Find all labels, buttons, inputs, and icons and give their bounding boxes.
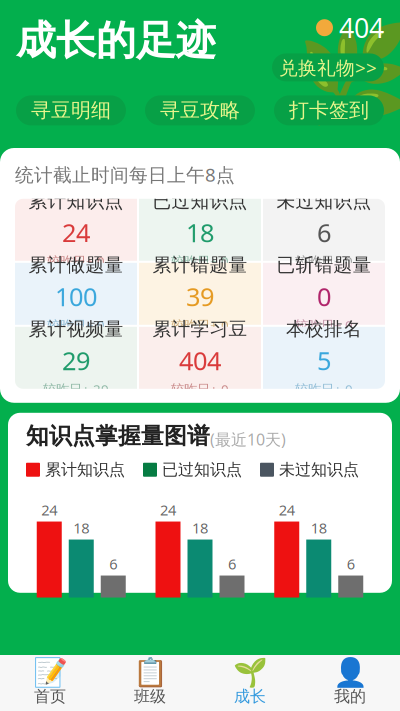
staticText: 24 — [160, 500, 176, 520]
staticText: 6 — [228, 554, 236, 574]
staticText: 我的 — [334, 687, 366, 706]
staticText: 成长 — [234, 687, 266, 706]
staticText: 较昨日+ 0 — [171, 316, 229, 334]
staticText: 累计学习豆 — [152, 318, 247, 341]
staticText: 累计错题量 — [152, 254, 247, 277]
staticText: 未过知识点 — [279, 460, 359, 480]
staticText: 24 — [41, 500, 57, 520]
staticText: 较昨日+ 0 — [47, 316, 105, 334]
button[interactable]: 兑换礼物>> — [272, 53, 384, 81]
staticText: 0 — [317, 280, 331, 313]
staticText: 18 — [311, 518, 327, 538]
button[interactable]: 寻豆攻略 — [145, 95, 255, 125]
staticText: 29 — [62, 344, 90, 377]
staticText: 成长的足迹 — [16, 16, 216, 65]
staticText: 较昨日+ 29 — [43, 380, 109, 398]
staticText: 较昨日+ 0 — [171, 252, 229, 270]
staticText: 寻豆明细 — [31, 98, 111, 123]
button[interactable]: 打卡签到 — [274, 95, 384, 125]
staticText: 📝 — [32, 656, 67, 688]
staticText: 打卡签到 — [289, 98, 369, 123]
staticText: 18 — [192, 518, 208, 538]
staticText: 累计知识点 — [45, 460, 125, 480]
staticText: 18 — [186, 216, 214, 249]
staticText: 🌿 — [297, 21, 400, 127]
staticText: 6 — [109, 554, 117, 574]
staticText: 班级 — [134, 687, 166, 706]
staticText: 已过知识点 — [162, 460, 242, 480]
staticText: 24 — [62, 216, 90, 249]
staticText: 较昨日+ 0 — [295, 316, 353, 334]
staticText: 已过知识点 — [152, 190, 247, 213]
staticText: 6 — [347, 554, 355, 574]
staticText: 🌱 — [232, 656, 267, 688]
staticText: 首页 — [34, 687, 66, 706]
staticText: 已斩错题量 — [276, 254, 371, 277]
staticText: 累计知识点 — [28, 190, 123, 213]
staticText: 较昨日+ 0 — [47, 252, 105, 270]
staticText: 知识点掌握量图谱 — [26, 422, 210, 450]
staticText: 较昨日+ 0 — [295, 380, 353, 398]
staticText: 未过知识点 — [276, 190, 371, 213]
staticText: (最近10天) — [210, 429, 286, 450]
staticText: 📋 — [132, 656, 167, 688]
button[interactable]: 📋 — [100, 655, 200, 711]
staticText: 较昨日+ 0 — [171, 380, 229, 398]
staticText: 累计视频量 — [28, 318, 123, 341]
staticText: 100 — [55, 280, 97, 313]
staticText: 404 — [179, 344, 221, 377]
button[interactable]: 📝 — [0, 655, 100, 711]
staticText: 24 — [279, 500, 295, 520]
staticText: 统计截止时间每日上午8点 — [15, 162, 235, 187]
staticText: 👤 — [332, 656, 367, 688]
staticText: 18 — [73, 518, 89, 538]
staticText: 较昨日+ 0 — [295, 252, 353, 270]
staticText: 6 — [317, 216, 331, 249]
staticText: 5 — [317, 344, 331, 377]
button[interactable]: 寻豆明细 — [16, 95, 126, 125]
button[interactable]: 👤 — [300, 655, 400, 711]
staticText: 39 — [186, 280, 214, 313]
staticText: 累计做题量 — [28, 254, 123, 277]
staticText: 兑换礼物>> — [279, 55, 377, 80]
button[interactable]: 🌱 — [200, 655, 300, 711]
staticText: 404 — [339, 10, 384, 45]
staticText: 本校排名 — [286, 318, 362, 341]
staticText: 寻豆攻略 — [160, 98, 240, 123]
